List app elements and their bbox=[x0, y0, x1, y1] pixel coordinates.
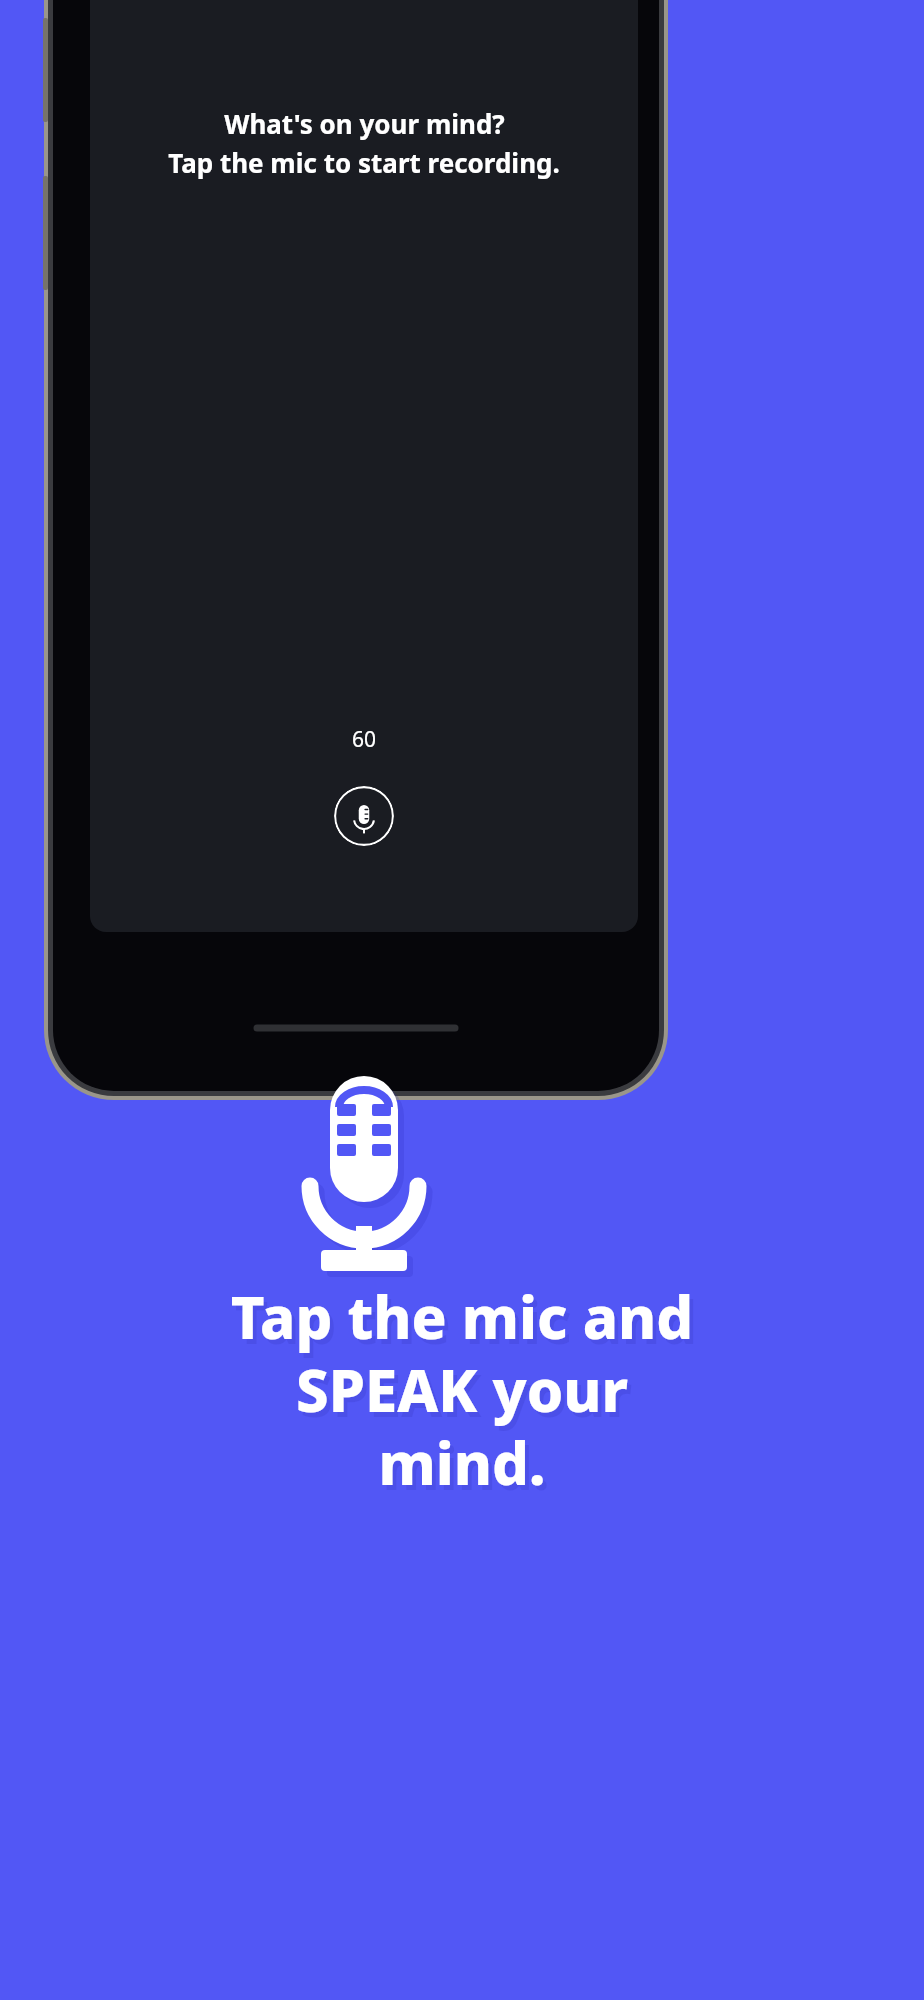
staticText: Tap the mic and SPEAK your mind. bbox=[24, 1282, 908, 1507]
button[interactable]: Start recording bbox=[334, 786, 394, 846]
staticText: Tap the mic and SPEAK your mind. bbox=[20, 1277, 904, 1502]
other: Microphone bbox=[286, 1074, 442, 1274]
staticText: Tap the mic to start recording. bbox=[168, 145, 560, 180]
staticText: What's on your mind? bbox=[224, 106, 505, 141]
staticText: 60 bbox=[352, 725, 377, 754]
